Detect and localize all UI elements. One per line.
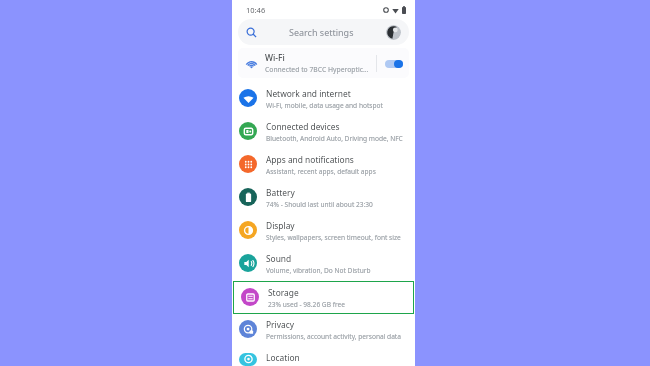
button[interactable]: Search settings [238,19,409,45]
staticText: Search settings [289,26,354,38]
staticText: 74% - Should last until about 23:30 [266,200,373,209]
button[interactable]: Connected devices [232,116,415,149]
staticText: Location [266,352,300,363]
button[interactable]: Network and internet [232,83,415,116]
staticText: Assistant, recent apps, default apps [266,167,376,176]
staticText: Storage [268,287,299,298]
staticText: Privacy [266,319,294,330]
staticText: Bluetooth, Android Auto, Driving mode, N… [266,134,403,143]
staticText: Wi-Fi [265,52,285,64]
staticText: Battery [266,187,295,198]
staticText: Wi-Fi, mobile, data usage and hotspot [266,101,383,110]
button[interactable]: Storage [234,282,413,313]
button[interactable]: Location [232,347,415,366]
staticText: Styles, wallpapers, screen timeout, font… [266,233,401,242]
button[interactable]: Privacy [232,314,415,347]
staticText: Permissions, account activity, personal … [266,332,401,341]
button[interactable]: Wi-Fi toggle [369,48,409,78]
staticText: Connected devices [266,121,340,132]
staticText: Apps and notifications [266,154,354,165]
staticText: Sound [266,253,292,264]
button[interactable]: Battery [232,182,415,215]
staticText: 23% used - 98.26 GB free [268,300,345,309]
staticText: 10:46 [246,5,266,15]
button[interactable]: Apps and notifications [232,149,415,182]
button[interactable]: Sound [232,248,415,281]
button[interactable]: Wi-Fi [238,48,409,78]
staticText: Volume, vibration, Do Not Disturb [266,266,371,275]
button[interactable]: Display [232,215,415,248]
staticText: Connected to 7BCC Hyperoptic 1… [265,65,369,74]
staticText: Network and internet [266,88,351,99]
staticText: Display [266,220,295,231]
button[interactable]: Account [386,25,401,40]
